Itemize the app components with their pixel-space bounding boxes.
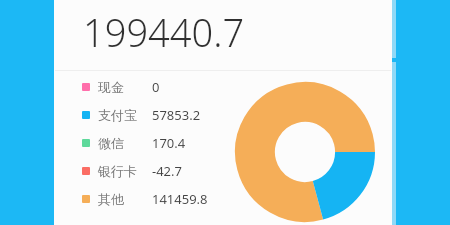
staticText: 微信 — [98, 135, 124, 151]
button[interactable]: Account balance donut chart — [235, 82, 375, 222]
button[interactable]: 支付宝 — [82, 101, 234, 129]
button[interactable]: 现金 — [82, 73, 234, 101]
staticText: 其他 — [98, 191, 124, 207]
button[interactable]: 199440.7 — [54, 0, 392, 70]
staticText: 199440.7 — [83, 6, 245, 58]
staticText: 170.4 — [152, 134, 186, 152]
staticText: -42.7 — [152, 162, 182, 180]
staticText: 银行卡 — [98, 163, 137, 179]
button[interactable]: 微信 — [82, 129, 234, 157]
staticText: 现金 — [98, 79, 124, 95]
button[interactable]: 其他 — [82, 185, 234, 213]
staticText: 0 — [152, 78, 160, 96]
staticText: 141459.8 — [152, 190, 208, 208]
button[interactable]: 银行卡 — [82, 157, 234, 185]
staticText: 57853.2 — [152, 106, 201, 124]
staticText: 支付宝 — [98, 107, 137, 123]
